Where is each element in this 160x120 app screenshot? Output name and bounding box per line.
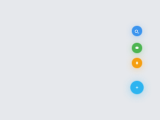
button[interactable]: New message	[132, 43, 142, 53]
button[interactable]: Search	[132, 26, 142, 36]
button[interactable]: Photo	[132, 58, 142, 68]
button[interactable]: Add	[130, 81, 143, 94]
